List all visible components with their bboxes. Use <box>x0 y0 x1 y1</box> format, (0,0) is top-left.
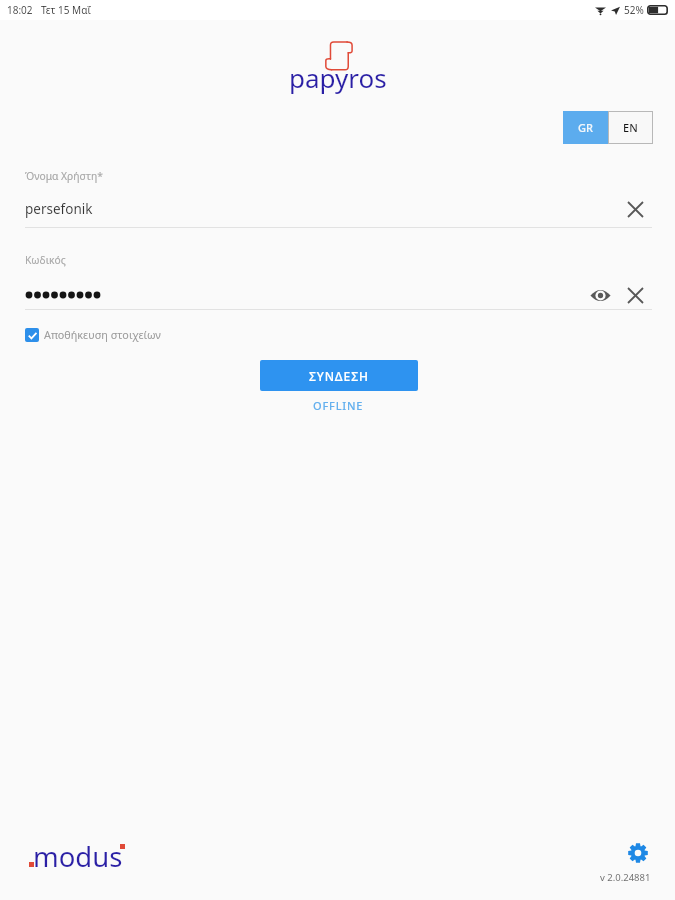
button[interactable]: OFFLINE <box>299 395 378 416</box>
staticText: 52% <box>624 3 644 17</box>
button[interactable]: EN <box>608 111 653 144</box>
staticText: ΣΥΝΔΕΣΗ <box>309 368 369 384</box>
staticText: 18:02 <box>7 3 33 17</box>
button[interactable]: Clear <box>623 197 647 221</box>
staticText: EN <box>623 120 638 135</box>
button[interactable]: Settings <box>625 840 651 866</box>
button[interactable]: ΣΥΝΔΕΣΗ <box>260 360 418 391</box>
button[interactable]: GR <box>563 111 608 144</box>
staticText: papyros <box>289 60 387 95</box>
staticText: OFFLINE <box>313 398 364 413</box>
staticText: modus <box>33 838 123 875</box>
staticText: Αποθήκευση στοιχείων <box>44 327 161 342</box>
staticText: Τετ 15 Μαΐ <box>41 3 91 17</box>
staticText: GR <box>578 120 593 135</box>
button[interactable]: Αποθήκευση στοιχείων <box>25 327 161 342</box>
button[interactable]: Clear <box>623 283 647 307</box>
staticText: Κωδικός <box>25 253 66 267</box>
staticText: v 2.0.24881 <box>600 871 651 884</box>
staticText: persefonik <box>25 200 623 218</box>
staticText: Όνομα Χρήστη* <box>25 169 103 183</box>
button[interactable]: Show password <box>588 283 612 307</box>
